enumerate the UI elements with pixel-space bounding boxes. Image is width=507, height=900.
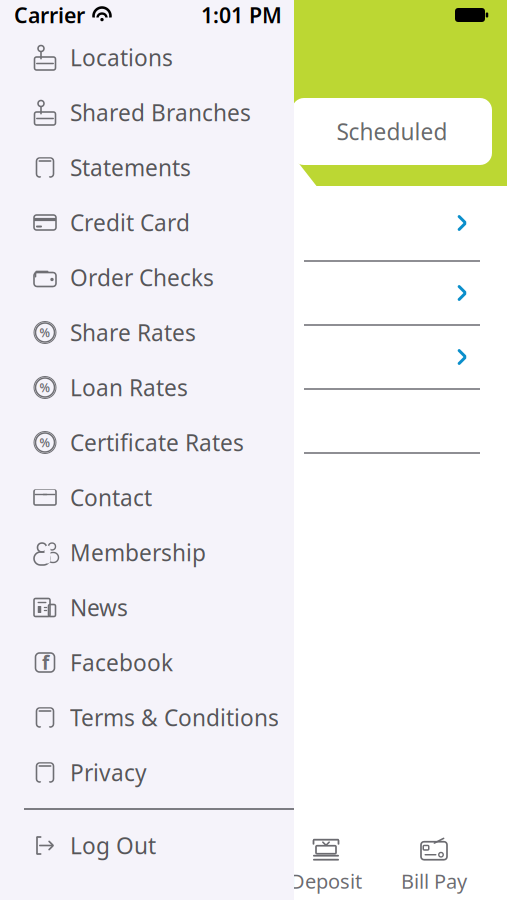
staticText: f xyxy=(42,650,49,675)
staticText: Order Checks xyxy=(70,262,214,292)
staticText: Facebook xyxy=(70,647,173,677)
staticText: 1:01 PM xyxy=(201,1,282,29)
button[interactable]: Deposit xyxy=(272,828,380,900)
button[interactable]: % xyxy=(0,305,294,360)
staticText: Certificate Rates xyxy=(70,427,244,457)
staticText: % xyxy=(39,379,50,395)
staticText: Locations xyxy=(70,42,173,72)
staticText: Statements xyxy=(70,152,191,182)
button[interactable]: News xyxy=(0,580,294,635)
button[interactable]: % xyxy=(0,360,294,415)
button[interactable] xyxy=(292,390,492,454)
staticText: % xyxy=(39,434,50,450)
button[interactable]: Scheduled xyxy=(292,98,492,165)
staticText: Loan Rates xyxy=(70,372,188,402)
staticText: Carrier xyxy=(14,1,85,29)
button[interactable]: Statements xyxy=(0,140,294,195)
staticText: Bill Pay xyxy=(401,868,467,894)
button[interactable]: f xyxy=(0,635,294,690)
button[interactable]: Bill Pay xyxy=(380,828,488,900)
button[interactable]: Privacy xyxy=(0,745,294,800)
button[interactable]: Order Checks xyxy=(0,250,294,305)
staticText: Shared Branches xyxy=(70,97,251,127)
staticText: Contact xyxy=(70,482,152,512)
button[interactable] xyxy=(292,326,492,390)
button[interactable] xyxy=(292,262,492,326)
staticText: Deposit xyxy=(290,868,362,894)
button[interactable]: Membership xyxy=(0,525,294,580)
staticText: Scheduled xyxy=(336,116,447,146)
button[interactable]: Log Out xyxy=(0,818,294,873)
button[interactable]: Locations xyxy=(0,30,294,85)
staticText: Credit Card xyxy=(70,207,190,237)
button[interactable] xyxy=(292,186,492,262)
staticText: Terms & Conditions xyxy=(70,702,279,732)
button[interactable]: Credit Card xyxy=(0,195,294,250)
button[interactable]: Terms & Conditions xyxy=(0,690,294,745)
button[interactable]: Contact xyxy=(0,470,294,525)
staticText: Privacy xyxy=(70,757,147,787)
staticText: News xyxy=(70,592,128,622)
staticText: % xyxy=(39,324,50,340)
staticText: Log Out xyxy=(70,830,156,860)
staticText: Share Rates xyxy=(70,317,196,347)
button[interactable]: Shared Branches xyxy=(0,85,294,140)
button[interactable]: % xyxy=(0,415,294,470)
staticText: Membership xyxy=(70,537,206,567)
